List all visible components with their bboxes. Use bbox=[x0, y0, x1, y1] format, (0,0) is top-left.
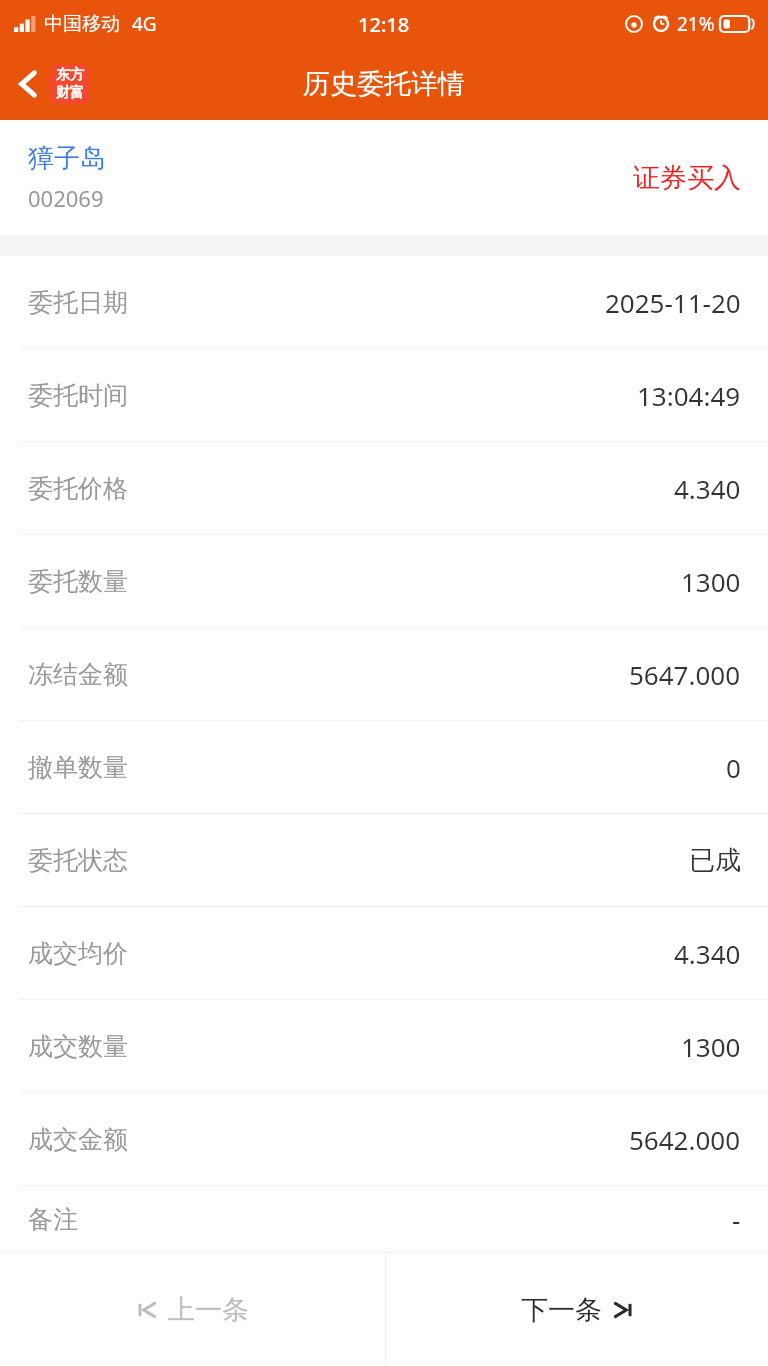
staticText: 撤单数量 bbox=[28, 752, 128, 783]
staticText: 獐子岛 bbox=[28, 142, 106, 175]
staticText: 财富 bbox=[56, 84, 84, 102]
button[interactable]: 委托数量 bbox=[0, 535, 768, 628]
staticText: 2025-11-20 bbox=[605, 285, 741, 320]
staticText: 证券买入 bbox=[633, 161, 741, 195]
staticText: 4.340 bbox=[674, 471, 741, 506]
staticText: 12:18 bbox=[358, 11, 410, 38]
staticText: 已成 bbox=[689, 844, 741, 877]
staticText: 成交均价 bbox=[28, 938, 128, 969]
button[interactable]: 撤单数量 bbox=[0, 721, 768, 814]
staticText: 委托时间 bbox=[28, 380, 128, 411]
button[interactable]: 成交金额 bbox=[0, 1093, 768, 1186]
staticText: 下一条 bbox=[521, 1293, 602, 1327]
staticText: 委托状态 bbox=[28, 845, 128, 876]
button[interactable]: 獐子岛 bbox=[0, 120, 768, 235]
button[interactable]: 备注 bbox=[0, 1186, 768, 1252]
staticText: 备注 bbox=[28, 1204, 78, 1235]
button[interactable]: 下一条 bbox=[386, 1253, 768, 1366]
staticText: 委托价格 bbox=[28, 473, 128, 504]
button[interactable]: 委托时间 bbox=[0, 349, 768, 442]
button[interactable]: 委托价格 bbox=[0, 442, 768, 535]
staticText: 成交金额 bbox=[28, 1124, 128, 1155]
button[interactable]: Back bbox=[0, 58, 100, 110]
staticText: - bbox=[732, 1202, 741, 1237]
staticText: 21% bbox=[677, 11, 715, 37]
button[interactable]: 冻结金额 bbox=[0, 628, 768, 721]
staticText: 5647.000 bbox=[629, 657, 741, 692]
staticText: 002069 bbox=[28, 183, 104, 213]
button[interactable]: 委托状态 bbox=[0, 814, 768, 907]
staticText: 0 bbox=[726, 750, 741, 785]
staticText: 4.340 bbox=[674, 936, 741, 971]
staticText: 5642.000 bbox=[629, 1122, 741, 1157]
staticText: 委托数量 bbox=[28, 566, 128, 597]
staticText: 4G bbox=[132, 11, 157, 37]
staticText: 冻结金额 bbox=[28, 659, 128, 690]
staticText: 1300 bbox=[681, 1029, 741, 1064]
button[interactable]: 委托日期 bbox=[0, 256, 768, 349]
staticText: 上一条 bbox=[168, 1293, 249, 1327]
button[interactable]: 成交均价 bbox=[0, 907, 768, 1000]
button[interactable]: 上一条 bbox=[0, 1253, 385, 1366]
staticText: 1300 bbox=[681, 564, 741, 599]
staticText: 历史委托详情 bbox=[303, 67, 465, 101]
staticText: 成交数量 bbox=[28, 1031, 128, 1062]
staticText: 委托日期 bbox=[28, 287, 128, 318]
staticText: 中国移动 bbox=[44, 12, 120, 36]
button[interactable]: 成交数量 bbox=[0, 1000, 768, 1093]
staticText: 13:04:49 bbox=[637, 378, 741, 413]
staticText: 东方 bbox=[56, 66, 84, 84]
